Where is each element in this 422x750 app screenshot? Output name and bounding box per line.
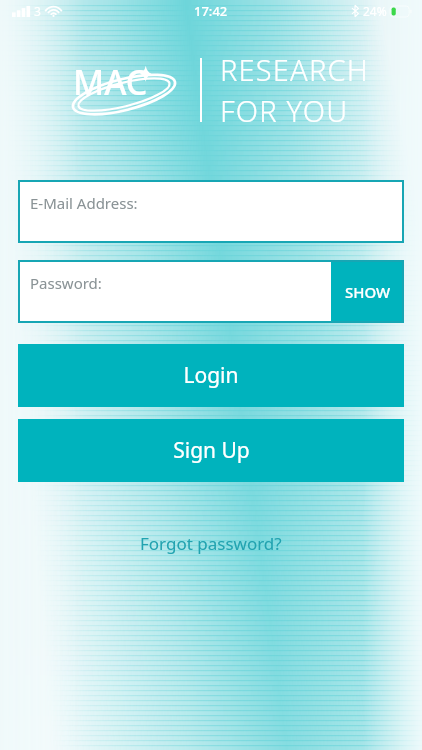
staticText: FOR YOU <box>220 91 349 130</box>
staticText: Password: <box>30 273 102 293</box>
staticText: 3 <box>34 3 41 19</box>
staticText: Sign Up <box>173 436 250 465</box>
button[interactable]: Forgot password? <box>126 526 296 561</box>
staticText: MAC <box>73 59 148 105</box>
button[interactable]: Sign Up <box>18 419 404 482</box>
staticText: E-Mail Address: <box>30 193 138 213</box>
button[interactable]: Password: <box>18 260 331 323</box>
staticText: SHOW <box>345 282 391 302</box>
staticText: 17:42 <box>194 2 228 20</box>
button[interactable]: Login <box>18 344 404 407</box>
staticText: RESEARCH <box>220 50 369 89</box>
staticText: Login <box>183 361 239 390</box>
staticText: Forgot password? <box>140 532 282 555</box>
button[interactable]: SHOW <box>331 260 404 323</box>
staticText: 24% <box>363 3 387 19</box>
button[interactable]: E-Mail Address: <box>18 180 404 243</box>
